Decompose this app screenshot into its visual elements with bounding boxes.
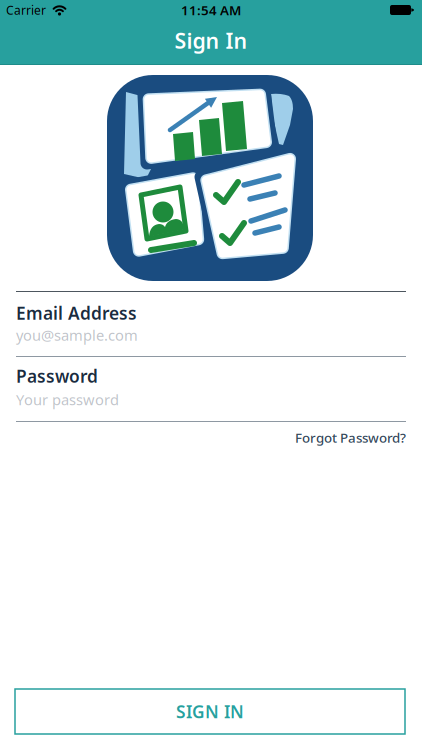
button[interactable]: Forgot Password? [295,425,406,449]
button[interactable]: SIGN IN [15,689,405,734]
button[interactable]: Email Address [16,303,406,349]
button[interactable]: Password [16,366,406,412]
staticText: Email Address [16,301,137,324]
staticText: you@sample.com [16,325,138,345]
staticText: Your password [16,390,119,409]
staticText: 11:54 AM [181,1,241,19]
staticText: Password [16,364,98,387]
staticText: Carrier [6,2,46,18]
staticText: SIGN IN [176,700,244,723]
staticText: Forgot Password? [295,429,406,446]
staticText: Sign In [174,26,247,55]
